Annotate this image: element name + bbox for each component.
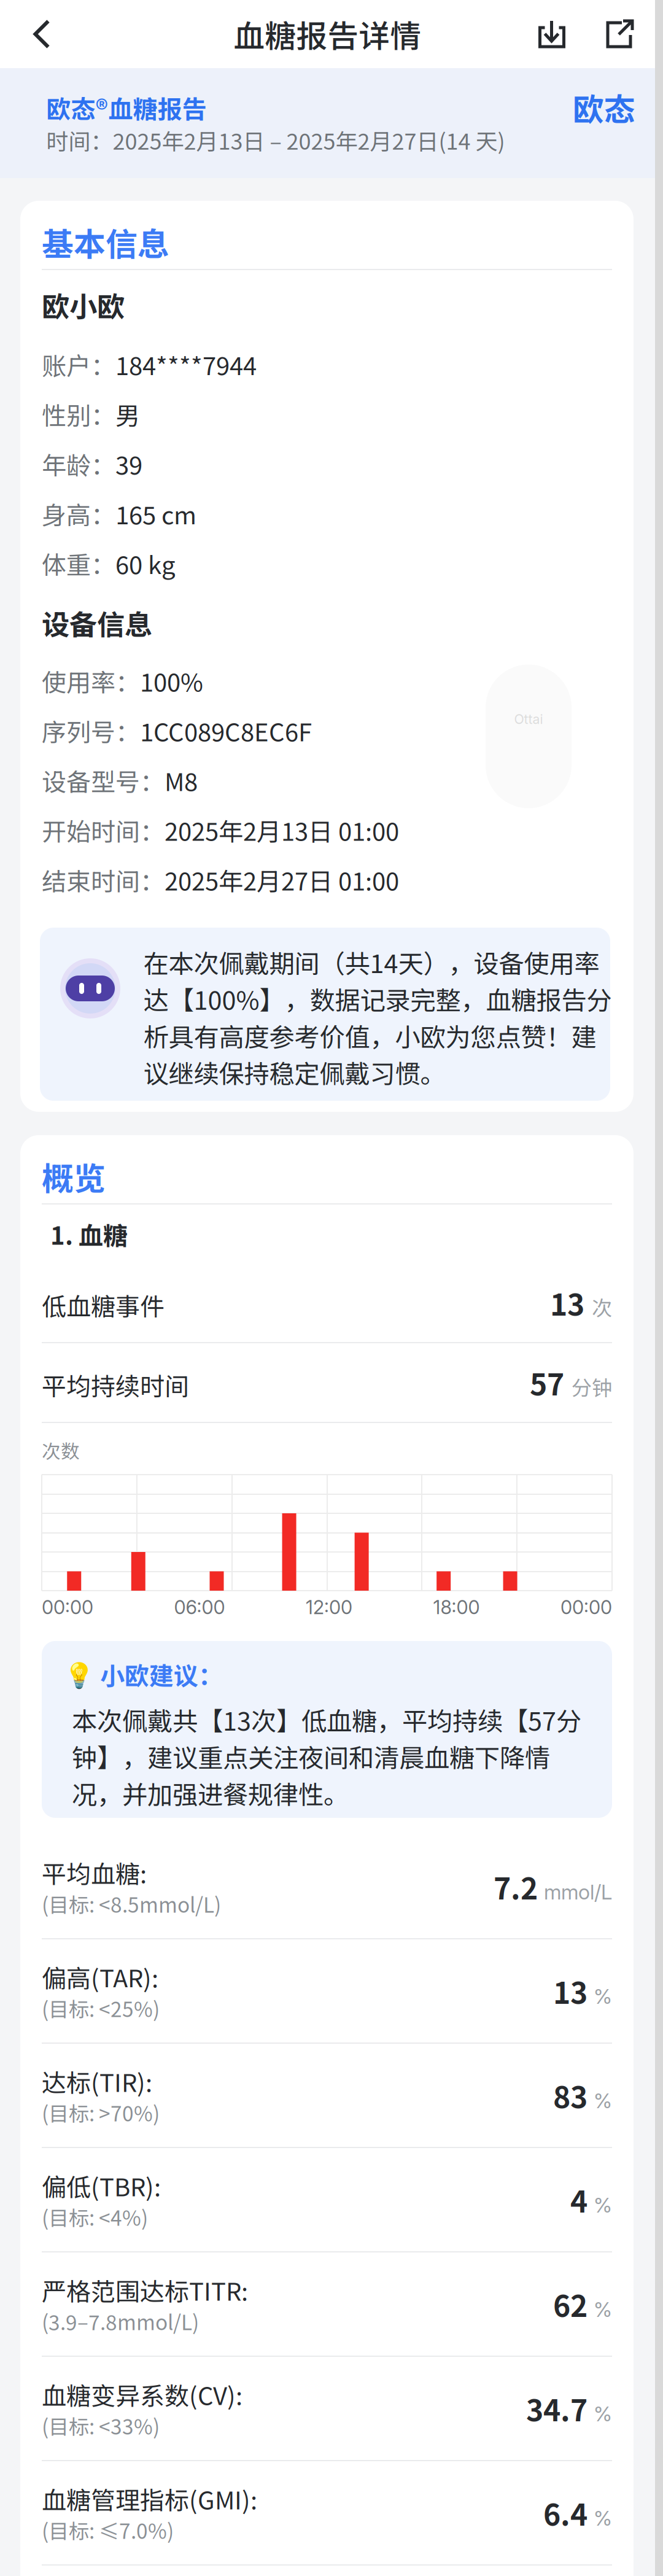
staticText: 1CC089C8EC6F (140, 713, 312, 748)
staticText: % (594, 2506, 612, 2531)
staticText: 概览 (42, 1153, 106, 1199)
staticText: 偏低(TBR): (42, 2168, 161, 2203)
staticText: % (594, 1984, 612, 2009)
staticText: 1. 血糖 (50, 1216, 128, 1252)
staticText: 欧态 (573, 85, 635, 130)
staticText: 结束时间： (42, 862, 165, 897)
staticText: 13 (550, 1281, 584, 1324)
staticText: 血糖变异系数(CV): (42, 2376, 242, 2412)
staticText: 184****7944 (115, 347, 257, 382)
staticText: % (594, 2401, 612, 2426)
staticText: (目标: >70%) (42, 2098, 160, 2127)
staticText: 性别： (42, 396, 115, 432)
staticText: 39 (115, 446, 142, 482)
staticText: 血糖报告详情 (234, 12, 421, 57)
staticText: 100% (140, 663, 203, 699)
staticText: mmol/L (544, 1880, 612, 1904)
staticText: M8 (165, 762, 198, 798)
staticText: 57 (530, 1361, 564, 1404)
staticText: 00:00 (560, 1596, 612, 1619)
button[interactable]: 下载 (520, 0, 584, 68)
staticText: (目标: <8.5mmol/L) (42, 1889, 221, 1919)
staticText: 使用率： (42, 663, 140, 699)
staticText: 开始时间： (42, 812, 165, 848)
staticText: 分钟 (572, 1372, 612, 1401)
staticText: 2025年2月27日 01:00 (165, 862, 399, 897)
staticText: 偏高(TAR): (42, 1959, 158, 1995)
staticText: % (594, 2088, 612, 2113)
staticText: % (594, 2193, 612, 2217)
staticText: 34.7 (526, 2387, 587, 2430)
staticText: 血糖管理指标(GMI): (42, 2481, 257, 2516)
staticText: 欧态®血糖报告 (46, 90, 207, 125)
staticText: (3.9–7.8mmol/L) (42, 2306, 199, 2336)
staticText: 83 (553, 2074, 587, 2117)
staticText: 欧小欧 (42, 285, 125, 325)
staticText: 男 (115, 396, 140, 432)
staticText: 设备型号： (42, 762, 165, 798)
staticText: 体重： (42, 545, 115, 581)
button[interactable]: 返回 (0, 0, 83, 68)
staticText: 低血糖事件 (42, 1287, 165, 1323)
staticText: 账户： (42, 347, 115, 382)
staticText: 次数 (42, 1436, 80, 1464)
staticText: 2025年2月13日 01:00 (165, 812, 399, 848)
staticText: 设备信息 (42, 603, 152, 643)
staticText: 7.2 (494, 1865, 538, 1908)
staticText: 本次佩戴共【13次】低血糖，平均持续【57分钟】，建议重点关注夜间和清晨血糖下降… (72, 1701, 581, 1811)
button[interactable]: 分享 (584, 0, 655, 68)
staticText: 身高： (42, 496, 115, 531)
staticText: 达标(TIR): (42, 2063, 152, 2099)
staticText: 年龄： (42, 446, 115, 482)
staticText: 序列号： (42, 713, 140, 748)
staticText: 平均血糖: (42, 1855, 147, 1890)
staticText: 62 (553, 2283, 587, 2325)
staticText: (目标: <33%) (42, 2411, 160, 2440)
staticText: 在本次佩戴期间（共14天），设备使用率达【100%】，数据记录完整，血糖报告分析… (143, 944, 612, 1091)
staticText: 165 cm (115, 496, 196, 531)
staticText: 时间：2025年2月13日 – 2025年2月27日(14 天) (46, 124, 505, 156)
staticText: 00:00 (42, 1596, 93, 1619)
staticText: 4 (570, 2178, 587, 2221)
staticText: Ottai (514, 711, 543, 727)
staticText: % (594, 2297, 612, 2322)
staticText: 06:00 (174, 1596, 225, 1619)
staticText: 💡 小欧建议： (64, 1656, 223, 1692)
staticText: (目标: ≤7.0%) (42, 2515, 174, 2545)
staticText: 基本信息 (42, 219, 169, 265)
staticText: 12:00 (306, 1596, 352, 1619)
staticText: 次 (592, 1292, 612, 1322)
staticText: 严格范围达标TITR: (42, 2272, 248, 2308)
staticText: 60 kg (115, 545, 176, 581)
staticText: (目标: <4%) (42, 2202, 148, 2232)
staticText: 13 (553, 1970, 587, 2012)
staticText: (目标: <25%) (42, 1993, 160, 2023)
staticText: 6.4 (543, 2491, 587, 2534)
staticText: 平均持续时间 (42, 1367, 189, 1402)
staticText: 18:00 (433, 1596, 480, 1619)
